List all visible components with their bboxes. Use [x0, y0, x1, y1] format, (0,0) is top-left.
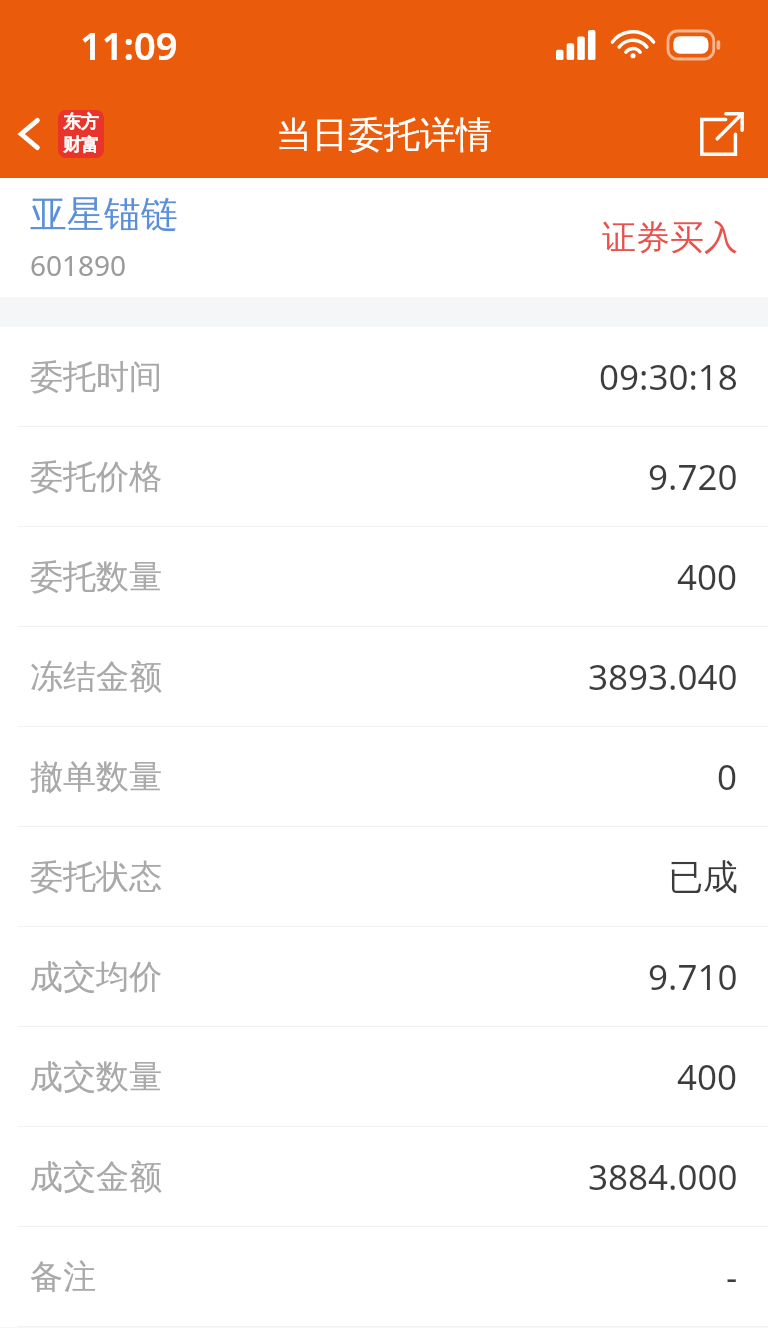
staticText: 成交均价	[30, 956, 162, 998]
button[interactable]: 备注	[0, 1227, 768, 1326]
staticText: 成交金额	[30, 1156, 162, 1198]
staticText: 证券买入	[602, 216, 738, 259]
button[interactable]: 委托状态	[0, 827, 768, 926]
staticText: 09:30:18	[599, 353, 738, 401]
staticText: 11:09	[80, 19, 178, 71]
button[interactable]: 冻结金额	[0, 627, 768, 726]
staticText: 0	[717, 753, 738, 801]
staticText: 备注	[30, 1256, 96, 1298]
staticText: -	[726, 1253, 738, 1301]
staticText: 400	[677, 553, 738, 601]
staticText: 9.710	[648, 953, 738, 1001]
staticText: 当日委托详情	[276, 112, 492, 157]
button[interactable]: 成交数量	[0, 1027, 768, 1126]
staticText: 东方	[63, 111, 99, 134]
button[interactable]: Share	[676, 96, 768, 172]
button[interactable]: 亚星锚链	[0, 178, 768, 297]
button[interactable]: Back	[0, 102, 114, 166]
staticText: 9.720	[648, 453, 738, 501]
staticText: 3884.000	[588, 1153, 738, 1201]
button[interactable]: 委托时间	[0, 327, 768, 426]
button[interactable]: 成交均价	[0, 927, 768, 1026]
button[interactable]: 成交金额	[0, 1127, 768, 1226]
staticText: 亚星锚链	[30, 191, 178, 238]
staticText: 3893.040	[588, 653, 738, 701]
staticText: 成交数量	[30, 1056, 162, 1098]
button[interactable]: 委托数量	[0, 527, 768, 626]
staticText: 委托时间	[30, 356, 162, 398]
staticText: 已成	[668, 855, 738, 899]
staticText: 委托状态	[30, 856, 162, 898]
button[interactable]: 委托价格	[0, 427, 768, 526]
staticText: 400	[677, 1053, 738, 1101]
staticText: 冻结金额	[30, 656, 162, 698]
staticText: 委托数量	[30, 556, 162, 598]
staticText: 财富	[63, 134, 99, 157]
staticText: 601890	[30, 246, 127, 284]
staticText: 撤单数量	[30, 756, 162, 798]
staticText: 委托价格	[30, 456, 162, 498]
button[interactable]: 撤单数量	[0, 727, 768, 826]
